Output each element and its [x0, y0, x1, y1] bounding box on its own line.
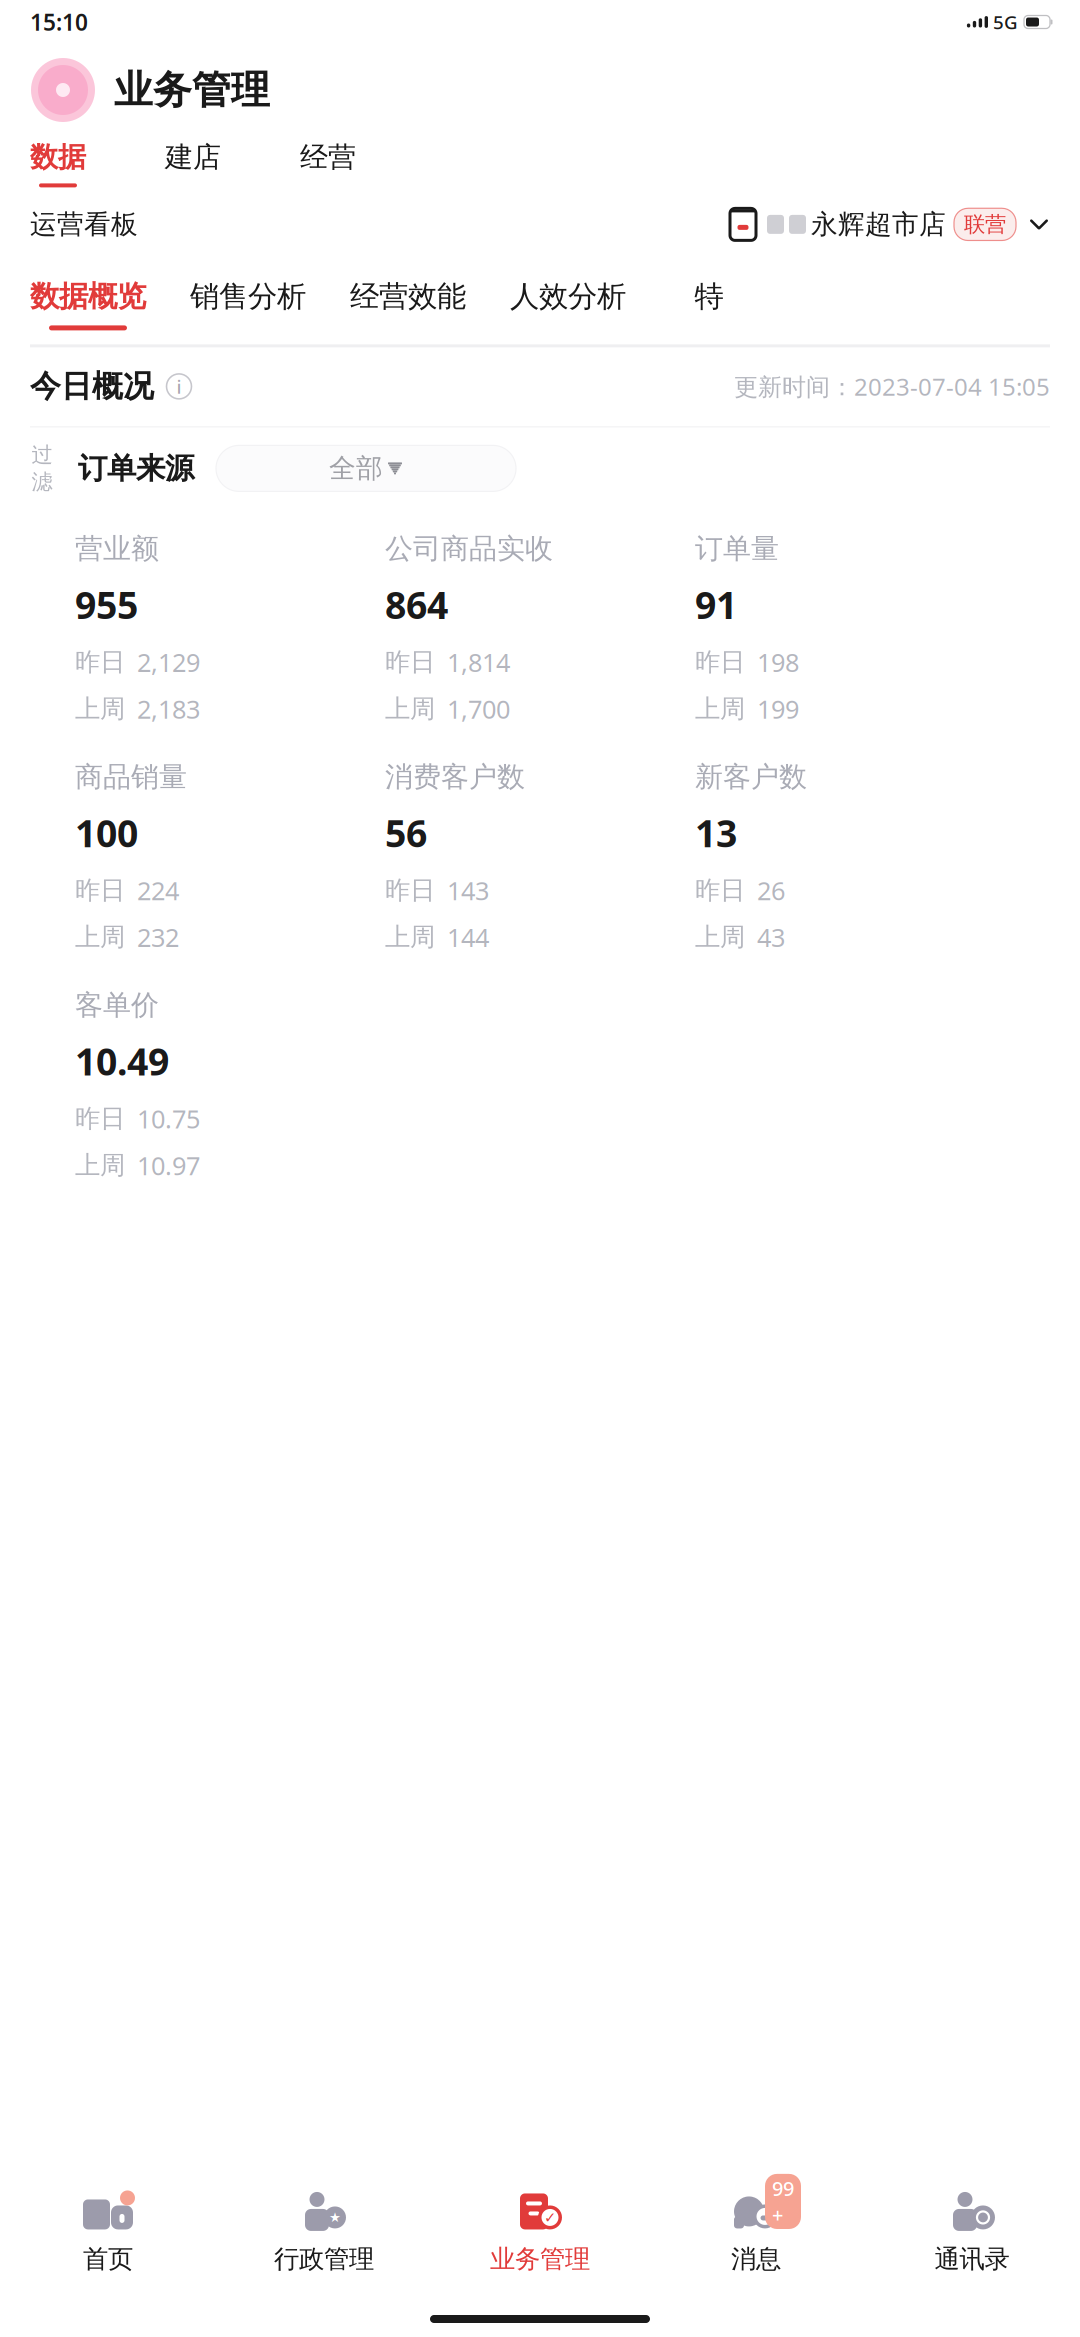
staticText: 昨日 — [385, 647, 435, 678]
staticText: 43 — [757, 920, 785, 954]
staticText: 100 — [75, 808, 138, 858]
staticText: 10.49 — [75, 1036, 169, 1086]
staticText: ★ — [329, 2210, 341, 2225]
staticText: 上周 — [75, 921, 125, 953]
staticText: 特 — [694, 278, 723, 314]
staticText: 商品销量 — [75, 760, 187, 794]
staticText: 销售分析 — [190, 278, 306, 314]
staticText: 15:10 — [30, 7, 88, 37]
staticText: 1,814 — [447, 645, 510, 679]
button[interactable]: 经营 — [300, 136, 435, 193]
staticText: 昨日 — [695, 875, 745, 906]
staticText: 全部 — [329, 452, 383, 485]
button[interactable]: 首页 — [0, 2175, 216, 2284]
staticText: 10.97 — [137, 1148, 200, 1182]
staticText: 上周 — [75, 1150, 125, 1181]
staticText: 5G — [993, 10, 1018, 34]
staticText: 955 — [75, 580, 138, 629]
staticText: 首页 — [83, 2243, 133, 2274]
staticText: 198 — [757, 645, 799, 679]
button[interactable]: 99+ — [648, 2175, 864, 2284]
staticText: 昨日 — [75, 1103, 125, 1134]
staticText: 143 — [447, 874, 489, 907]
staticText: 144 — [447, 920, 489, 954]
staticText: 昨日 — [75, 875, 125, 906]
staticText: 新客户数 — [695, 760, 807, 794]
staticText: 昨日 — [75, 647, 125, 678]
staticText: 过 — [31, 442, 52, 468]
staticText: 13 — [695, 808, 737, 858]
button[interactable]: 建店 — [165, 136, 300, 193]
staticText: 消费客户数 — [385, 760, 525, 794]
staticText: 更新时间：2023-07-04 15:05 — [734, 370, 1050, 402]
staticText: 运营看板 — [30, 208, 138, 241]
staticText: 91 — [695, 580, 737, 629]
staticText: 224 — [137, 874, 179, 907]
staticText: 864 — [385, 580, 448, 629]
staticText: 上周 — [385, 693, 435, 724]
button[interactable]: 数据概览 — [8, 272, 168, 330]
staticText: 消息 — [731, 2243, 781, 2274]
button[interactable]: 销售分析 — [168, 272, 328, 330]
staticText: 2,129 — [137, 645, 200, 679]
staticText: 昨日 — [385, 875, 435, 906]
staticText: 数据概览 — [30, 278, 146, 314]
staticText: 订单量 — [695, 531, 779, 566]
staticText: 上周 — [695, 693, 745, 724]
button[interactable]: 数据 — [30, 136, 165, 193]
staticText: 营业额 — [75, 531, 159, 566]
staticText: 上周 — [385, 921, 435, 953]
staticText: 通讯录 — [934, 2243, 1009, 2274]
button[interactable]: 说明 — [162, 369, 196, 403]
button[interactable]: ★ — [216, 2175, 432, 2284]
staticText: 56 — [385, 808, 427, 858]
staticText: 永辉超市店 — [811, 208, 946, 241]
staticText: 公司商品实收 — [385, 531, 553, 566]
button[interactable]: 通讯录 — [864, 2175, 1080, 2284]
staticText: 26 — [757, 874, 785, 907]
staticText: 人效分析 — [510, 278, 626, 314]
staticText: 业务管理 — [114, 66, 270, 114]
staticText: 经营 — [300, 140, 356, 174]
staticText: 99+ — [772, 2175, 794, 2228]
button[interactable]: ✓ — [432, 2175, 648, 2284]
staticText: 上周 — [75, 693, 125, 724]
staticText: 昨日 — [695, 647, 745, 678]
button[interactable]: 经营效能 — [328, 272, 488, 330]
staticText: 上周 — [695, 921, 745, 953]
staticText: 199 — [757, 692, 799, 726]
staticText: 滤 — [31, 469, 52, 495]
staticText: 经营效能 — [350, 278, 466, 314]
staticText: 建店 — [165, 140, 221, 174]
button[interactable]: 永辉超市店 — [729, 207, 1050, 241]
staticText: 数据 — [30, 140, 86, 174]
staticText: 业务管理 — [490, 2243, 590, 2274]
staticText: 232 — [137, 920, 179, 954]
staticText: 1,700 — [447, 692, 510, 726]
staticText: 今日概况 — [30, 368, 154, 405]
button[interactable]: 全部 — [216, 445, 516, 491]
staticText: 联营 — [964, 211, 1006, 237]
staticText: i — [176, 374, 181, 399]
staticText: 10.75 — [137, 1102, 200, 1135]
staticText: 行政管理 — [274, 2243, 374, 2274]
staticText: 订单来源 — [78, 450, 194, 486]
staticText: ✓ — [544, 2209, 556, 2226]
button[interactable]: 人效分析 — [488, 272, 648, 330]
staticText: 客单价 — [75, 988, 159, 1022]
staticText: 2,183 — [137, 692, 200, 726]
button[interactable]: 特 — [648, 272, 770, 330]
